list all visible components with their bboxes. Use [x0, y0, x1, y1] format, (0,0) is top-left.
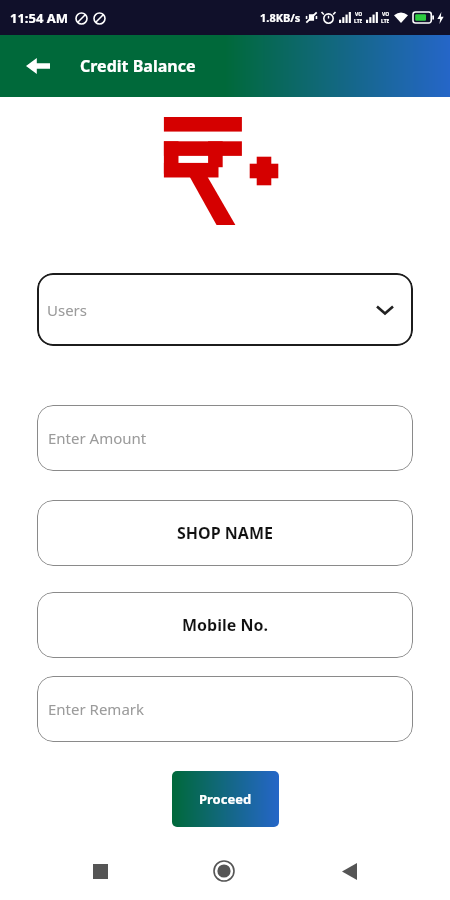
button[interactable]: Mobile No. [37, 592, 413, 658]
staticText: Mobile No. [182, 614, 268, 636]
button[interactable]: Enter Remark [37, 676, 413, 742]
staticText: Credit Balance [80, 55, 196, 77]
button[interactable]: Home [200, 847, 248, 895]
staticText: 1.8KB/s [260, 10, 301, 25]
staticText: 11:54 AM [10, 9, 69, 27]
staticText: LTE [381, 18, 390, 25]
staticText: SHOP NAME [177, 522, 273, 544]
staticText: Enter Amount [48, 428, 147, 448]
staticText: Users [47, 300, 87, 320]
button[interactable]: Back [325, 847, 373, 895]
button[interactable]: Enter Amount [37, 405, 413, 471]
staticText: Enter Remark [48, 699, 145, 719]
button[interactable]: Back [18, 46, 58, 86]
button[interactable]: Proceed [172, 771, 279, 827]
staticText: Proceed [199, 790, 252, 808]
staticText: VO [382, 11, 390, 18]
staticText: LTE [354, 18, 363, 25]
staticText: VO [355, 11, 363, 18]
button[interactable]: Recents [76, 847, 124, 895]
button[interactable]: Users [37, 273, 413, 346]
button[interactable]: SHOP NAME [37, 500, 413, 566]
